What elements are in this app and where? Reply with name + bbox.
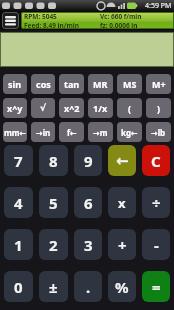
button[interactable]: ÷ bbox=[142, 187, 170, 218]
staticText: 1 bbox=[14, 235, 23, 255]
button[interactable]: →in bbox=[31, 122, 55, 142]
staticText: = bbox=[152, 277, 161, 297]
button[interactable] bbox=[0, 32, 174, 67]
button[interactable]: 5 bbox=[39, 187, 68, 218]
button[interactable]: 9 bbox=[74, 145, 102, 176]
button[interactable]: ) bbox=[146, 98, 171, 118]
button[interactable]: + bbox=[108, 229, 136, 260]
staticText: 0 bbox=[14, 277, 23, 297]
staticText: 1/x bbox=[93, 102, 108, 114]
button[interactable]: MS bbox=[117, 74, 142, 94]
staticText: ± bbox=[49, 277, 58, 297]
button[interactable]: RPM: 5045 bbox=[21, 12, 174, 29]
button[interactable]: C bbox=[142, 145, 170, 176]
button[interactable]: 4 bbox=[4, 187, 33, 218]
staticText: . bbox=[86, 277, 91, 297]
staticText: 8 bbox=[49, 151, 58, 171]
button[interactable]: % bbox=[108, 271, 136, 302]
staticText: Feed: 8.49 in/min bbox=[24, 21, 79, 29]
button[interactable]: 8 bbox=[39, 145, 68, 176]
button[interactable]: . bbox=[74, 271, 102, 302]
button[interactable]: ( bbox=[117, 98, 142, 118]
button[interactable]: →lb bbox=[146, 122, 171, 142]
staticText: 4:59 PM bbox=[145, 1, 172, 11]
button[interactable]: M+ bbox=[146, 74, 171, 94]
button[interactable]: MR bbox=[88, 74, 113, 94]
staticText: 9 bbox=[84, 151, 93, 171]
staticText: ← bbox=[116, 152, 129, 169]
button[interactable]: ← bbox=[108, 145, 136, 176]
staticText: RPM: 5045 bbox=[24, 12, 57, 21]
button[interactable]: f← bbox=[59, 122, 84, 142]
button[interactable]: kg← bbox=[117, 122, 142, 142]
staticText: tan bbox=[64, 78, 80, 90]
staticText: 3 bbox=[84, 235, 93, 255]
button[interactable]: 3 bbox=[74, 229, 102, 260]
button[interactable]: √ bbox=[31, 98, 55, 118]
staticText: + bbox=[118, 235, 127, 255]
button[interactable]: x bbox=[108, 187, 136, 218]
staticText: C bbox=[151, 151, 161, 171]
staticText: M+ bbox=[152, 78, 166, 90]
staticText: Vc: 660 f/min bbox=[100, 12, 142, 21]
button[interactable]: tan bbox=[59, 74, 84, 94]
staticText: 6 bbox=[84, 193, 93, 213]
staticText: % bbox=[115, 277, 129, 297]
button[interactable]: x^2 bbox=[59, 98, 84, 118]
staticText: x^y bbox=[7, 102, 23, 114]
button[interactable]: ± bbox=[39, 271, 68, 302]
button[interactable]: →m bbox=[88, 122, 113, 142]
staticText: 7 bbox=[14, 151, 23, 171]
button[interactable]: 1 bbox=[4, 229, 33, 260]
button[interactable]: 6 bbox=[74, 187, 102, 218]
button[interactable]: sin bbox=[3, 74, 27, 94]
button[interactable]: mm← bbox=[3, 122, 27, 142]
staticText: 4 bbox=[14, 193, 23, 213]
staticText: ( bbox=[128, 102, 132, 114]
staticText: x^2 bbox=[64, 102, 80, 114]
staticText: cos bbox=[36, 78, 51, 90]
staticText: →lb bbox=[151, 127, 166, 138]
button[interactable] bbox=[2, 12, 19, 29]
staticText: 2 bbox=[49, 235, 58, 255]
staticText: MR bbox=[93, 78, 108, 90]
button[interactable]: = bbox=[142, 271, 170, 302]
staticText: mm← bbox=[4, 127, 27, 138]
button[interactable]: 2 bbox=[39, 229, 68, 260]
staticText: sin bbox=[8, 78, 22, 90]
staticText: √ bbox=[40, 103, 47, 113]
button[interactable]: 1/x bbox=[88, 98, 113, 118]
button[interactable]: cos bbox=[31, 74, 55, 94]
staticText: - bbox=[154, 235, 159, 255]
staticText: ÷ bbox=[152, 193, 161, 213]
staticText: x bbox=[118, 194, 126, 212]
staticText: fz: 0.0006 in bbox=[100, 21, 138, 29]
staticText: ) bbox=[157, 102, 161, 114]
button[interactable]: x^y bbox=[3, 98, 27, 118]
button[interactable]: 7 bbox=[4, 145, 33, 176]
button[interactable]: 0 bbox=[4, 271, 33, 302]
staticText: f← bbox=[67, 127, 77, 138]
staticText: MS bbox=[123, 78, 137, 90]
staticText: 5 bbox=[49, 193, 58, 213]
staticText: →m bbox=[93, 127, 108, 138]
staticText: kg← bbox=[121, 127, 138, 138]
staticText: →in bbox=[36, 127, 51, 138]
button[interactable]: - bbox=[142, 229, 170, 260]
